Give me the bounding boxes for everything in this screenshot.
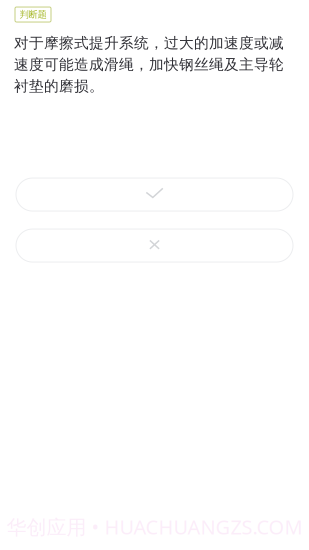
button[interactable]: 错误 <box>16 229 293 262</box>
staticText: 对于摩擦式提升系统，过大的加速度或减速度可能造成滑绳，加快钢丝绳及主导轮衬垫的磨… <box>14 34 284 95</box>
button[interactable]: 正确 <box>16 178 293 211</box>
staticText: 华创应用 • HUACHUANGZS.COM <box>6 513 302 540</box>
staticText: 判断题 <box>19 9 46 20</box>
